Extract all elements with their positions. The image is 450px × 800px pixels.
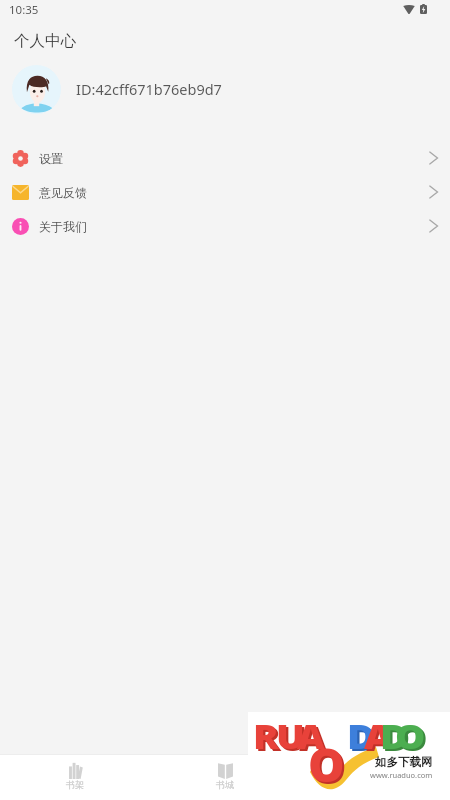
staticText: U: [278, 715, 307, 761]
staticText: 意见反馈: [39, 185, 87, 200]
button[interactable]: 用户资料: [0, 57, 450, 121]
staticText: www.ruaduo.com: [370, 770, 433, 780]
button[interactable]: 关于我们: [0, 209, 450, 243]
staticText: R: [253, 713, 280, 759]
staticText: 10:35: [9, 2, 39, 18]
button[interactable]: 设置: [0, 141, 450, 175]
staticText: A: [364, 713, 392, 759]
staticText: A: [366, 715, 394, 761]
button[interactable]: 书城: [150, 755, 300, 800]
button[interactable]: 我的: [300, 755, 450, 800]
staticText: D: [349, 715, 377, 761]
staticText: 书城: [216, 779, 234, 790]
staticText: 关于我们: [39, 219, 87, 234]
button[interactable]: 书架: [0, 755, 150, 800]
staticText: D: [382, 715, 410, 761]
staticText: 个人中心: [14, 31, 76, 51]
staticText: R: [255, 715, 282, 761]
staticText: O: [395, 713, 426, 759]
staticText: 如多下载网: [375, 755, 433, 769]
staticText: A: [297, 713, 325, 759]
staticText: D: [347, 713, 375, 759]
staticText: O: [397, 715, 429, 761]
staticText: ID:42cff671b76eb9d7: [76, 79, 222, 99]
staticText: O: [310, 735, 347, 798]
staticText: 书架: [66, 779, 84, 790]
staticText: U: [276, 713, 305, 759]
staticText: A: [299, 715, 327, 761]
staticText: O: [308, 733, 345, 796]
staticText: 设置: [39, 151, 63, 166]
button[interactable]: 意见反馈: [0, 175, 450, 209]
staticText: D: [380, 713, 408, 759]
